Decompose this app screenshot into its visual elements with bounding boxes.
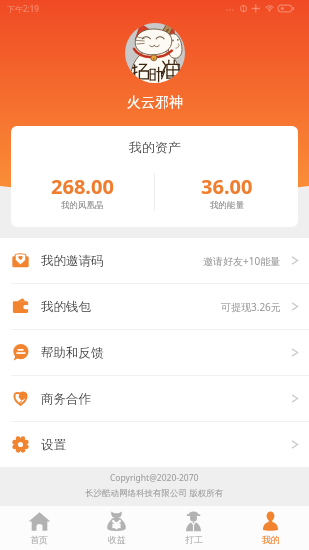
staticText: 首页: [30, 534, 48, 545]
button[interactable]: 设置: [0, 422, 309, 467]
staticText: 商务合作: [41, 391, 91, 407]
staticText: 我的凤凰晶: [61, 200, 104, 211]
button[interactable]: 我的邀请码: [0, 238, 309, 283]
button[interactable]: 商务合作: [0, 376, 309, 421]
staticText: 打工: [185, 534, 203, 545]
staticText: 36.00: [201, 173, 253, 200]
staticText: 我的钱包: [41, 299, 91, 315]
button[interactable]: 帮助和反馈: [0, 330, 309, 375]
button[interactable]: 我的: [232, 506, 309, 550]
staticText: 邀请好友+10能量: [203, 254, 281, 268]
staticText: 我的资产: [129, 139, 181, 155]
staticText: Copyright@2020-2070: [110, 472, 199, 484]
button[interactable]: 首页: [0, 506, 78, 550]
staticText: 268.00: [51, 173, 114, 200]
staticText: 可提现3.26元: [221, 300, 281, 314]
staticText: 下午2:19: [7, 3, 39, 14]
staticText: 我的邀请码: [41, 253, 104, 269]
button[interactable]: 打工: [155, 506, 232, 550]
staticText: 收益: [108, 534, 126, 545]
staticText: 我的能量: [210, 200, 244, 211]
button[interactable]: 我的钱包: [0, 284, 309, 329]
staticText: 设置: [41, 437, 66, 453]
staticText: 我的: [262, 534, 280, 545]
staticText: 长沙酷动网络科技有限公司 版权所有: [85, 487, 224, 499]
staticText: 帮助和反馈: [41, 345, 104, 361]
button[interactable]: 收益: [78, 506, 155, 550]
staticText: 火云邪神: [127, 94, 183, 112]
